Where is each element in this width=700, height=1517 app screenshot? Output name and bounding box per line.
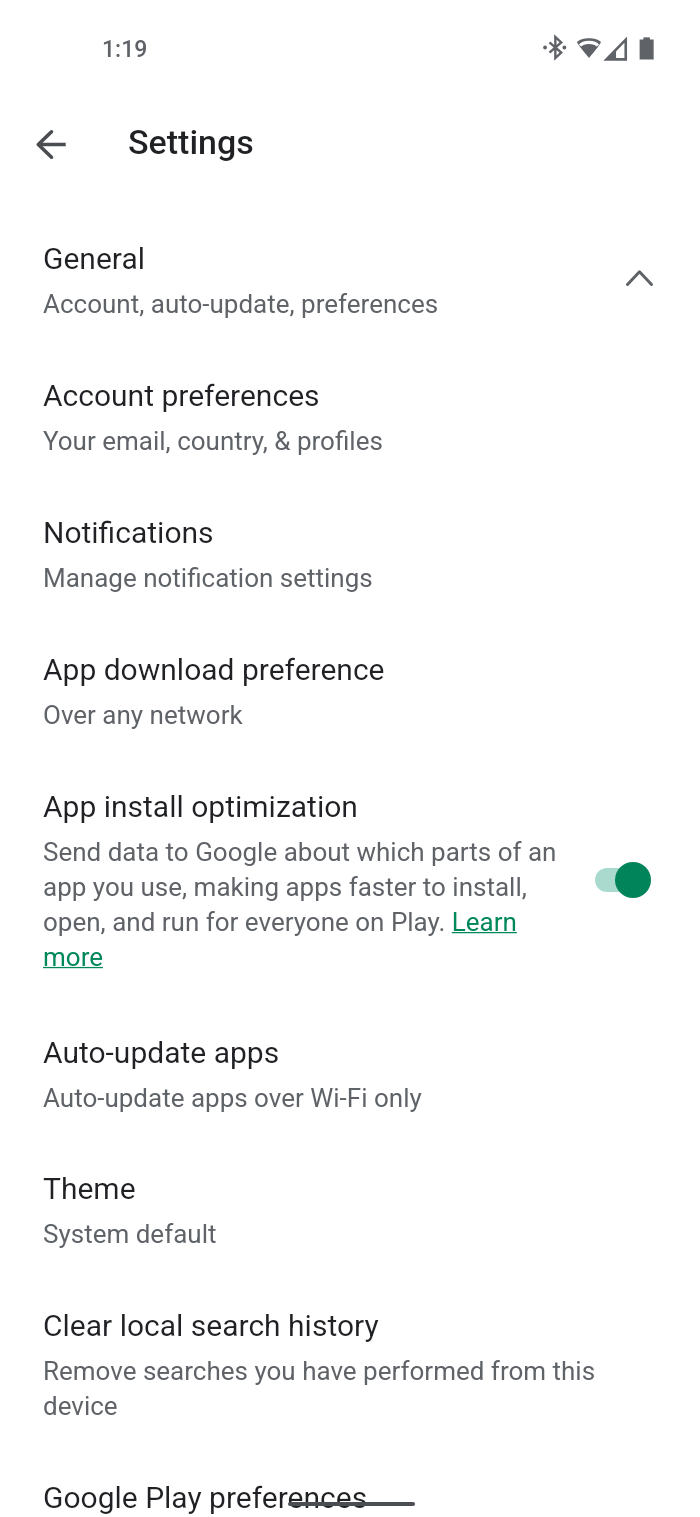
- staticText: Send data to Google about which parts of…: [43, 837, 567, 972]
- staticText: Your email, country, & profiles: [43, 426, 383, 456]
- staticText: Remove searches you have performed from …: [43, 1356, 657, 1421]
- button[interactable]: Back: [17, 110, 85, 178]
- button[interactable]: App download preference: [0, 630, 700, 740]
- staticText: App download preference: [43, 652, 385, 687]
- button[interactable]: Account preferences: [0, 356, 700, 466]
- button[interactable]: App install optimization: [0, 767, 700, 981]
- button[interactable]: Notifications: [0, 493, 700, 603]
- staticText: Account, auto-update, preferences: [43, 289, 439, 319]
- staticText: Theme: [43, 1171, 136, 1206]
- button[interactable]: General: [0, 219, 700, 329]
- button[interactable]: Google Play preferences: [0, 1458, 700, 1517]
- staticText: 1:19: [102, 36, 148, 63]
- staticText: Google Play preferences: [43, 1480, 368, 1515]
- staticText: System default: [43, 1219, 217, 1249]
- button[interactable]: Auto-update apps: [0, 1013, 700, 1123]
- staticText: App install optimization: [43, 789, 358, 824]
- staticText: Notifications: [43, 515, 214, 550]
- staticText: Auto-update apps over Wi-Fi only: [43, 1083, 422, 1113]
- staticText: Manage notification settings: [43, 563, 373, 593]
- button[interactable]: Theme: [0, 1149, 700, 1259]
- button[interactable]: Clear local search history: [0, 1286, 700, 1432]
- staticText: Auto-update apps: [43, 1035, 280, 1070]
- staticText: Account preferences: [43, 378, 320, 413]
- staticText: General: [43, 241, 146, 276]
- staticText: Settings: [128, 122, 254, 162]
- button[interactable]: App install optimization: [585, 856, 661, 904]
- button[interactable]: Collapse General: [608, 247, 670, 309]
- staticText: Clear local search history: [43, 1308, 379, 1343]
- staticText: Over any network: [43, 700, 243, 730]
